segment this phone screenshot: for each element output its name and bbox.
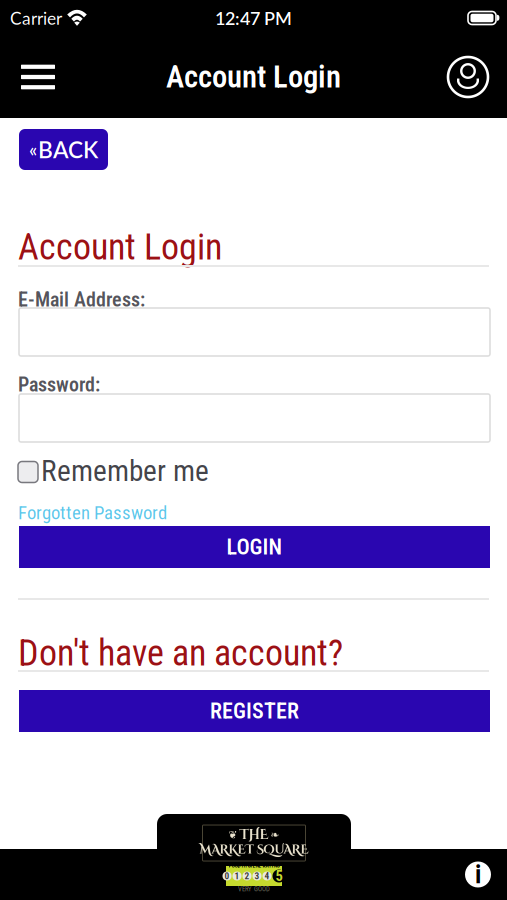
staticText: Account Login xyxy=(166,59,341,95)
staticText: Don't have an account? xyxy=(18,632,343,674)
staticText: THE xyxy=(239,826,268,844)
button[interactable]: Account xyxy=(445,54,491,100)
staticText: 4 xyxy=(264,870,269,881)
staticText: ❦ xyxy=(228,829,237,841)
staticText: « xyxy=(29,138,37,161)
staticText: Carrier xyxy=(10,8,62,28)
button[interactable]: LOGIN xyxy=(19,526,490,568)
staticText: 1 xyxy=(234,870,239,881)
button[interactable]: Forgotten Password xyxy=(18,502,167,524)
staticText: BACK xyxy=(38,136,98,163)
staticText: 3 xyxy=(254,870,259,881)
staticText: ❧ xyxy=(270,829,279,841)
staticText: i xyxy=(475,860,481,889)
staticText: E-Mail Address: xyxy=(18,288,145,311)
staticText: 12:47 PM xyxy=(215,7,292,29)
button[interactable]: Remember me xyxy=(18,459,209,485)
staticText: FOOD HYGIENE RATING xyxy=(228,862,279,869)
button[interactable]: « xyxy=(19,129,108,170)
staticText: Remember me xyxy=(41,454,209,488)
staticText: Account Login xyxy=(18,226,222,268)
staticText: MARKET SQUARE xyxy=(199,842,308,858)
staticText: 5 xyxy=(275,867,282,885)
staticText: LOGIN xyxy=(226,534,282,560)
staticText: 2 xyxy=(244,870,249,881)
staticText: VERY GOOD xyxy=(238,885,270,893)
staticText: REGISTER xyxy=(210,698,299,724)
button[interactable]: Information xyxy=(461,857,495,891)
staticText: Password: xyxy=(18,373,100,396)
staticText: 0 xyxy=(224,870,229,881)
button[interactable]: REGISTER xyxy=(19,690,490,732)
button[interactable]: Menu xyxy=(16,55,60,99)
staticText: Forgotten Password xyxy=(18,502,167,524)
